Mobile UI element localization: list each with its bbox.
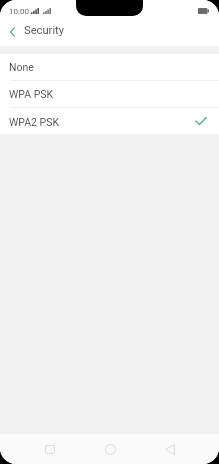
button[interactable]: Back <box>0 18 24 46</box>
button[interactable]: Recent apps <box>37 436 63 462</box>
button[interactable]: None <box>0 54 219 80</box>
staticText: WPA2 PSK <box>9 116 60 128</box>
staticText: WPA PSK <box>9 88 54 100</box>
button[interactable]: WPA2 PSK <box>0 108 219 134</box>
staticText: Security <box>24 24 65 37</box>
button[interactable]: WPA PSK <box>0 81 219 107</box>
button[interactable]: Home <box>97 436 123 462</box>
staticText: 10:00 <box>9 6 30 15</box>
button[interactable]: Back <box>157 436 183 462</box>
staticText: None <box>9 61 34 73</box>
